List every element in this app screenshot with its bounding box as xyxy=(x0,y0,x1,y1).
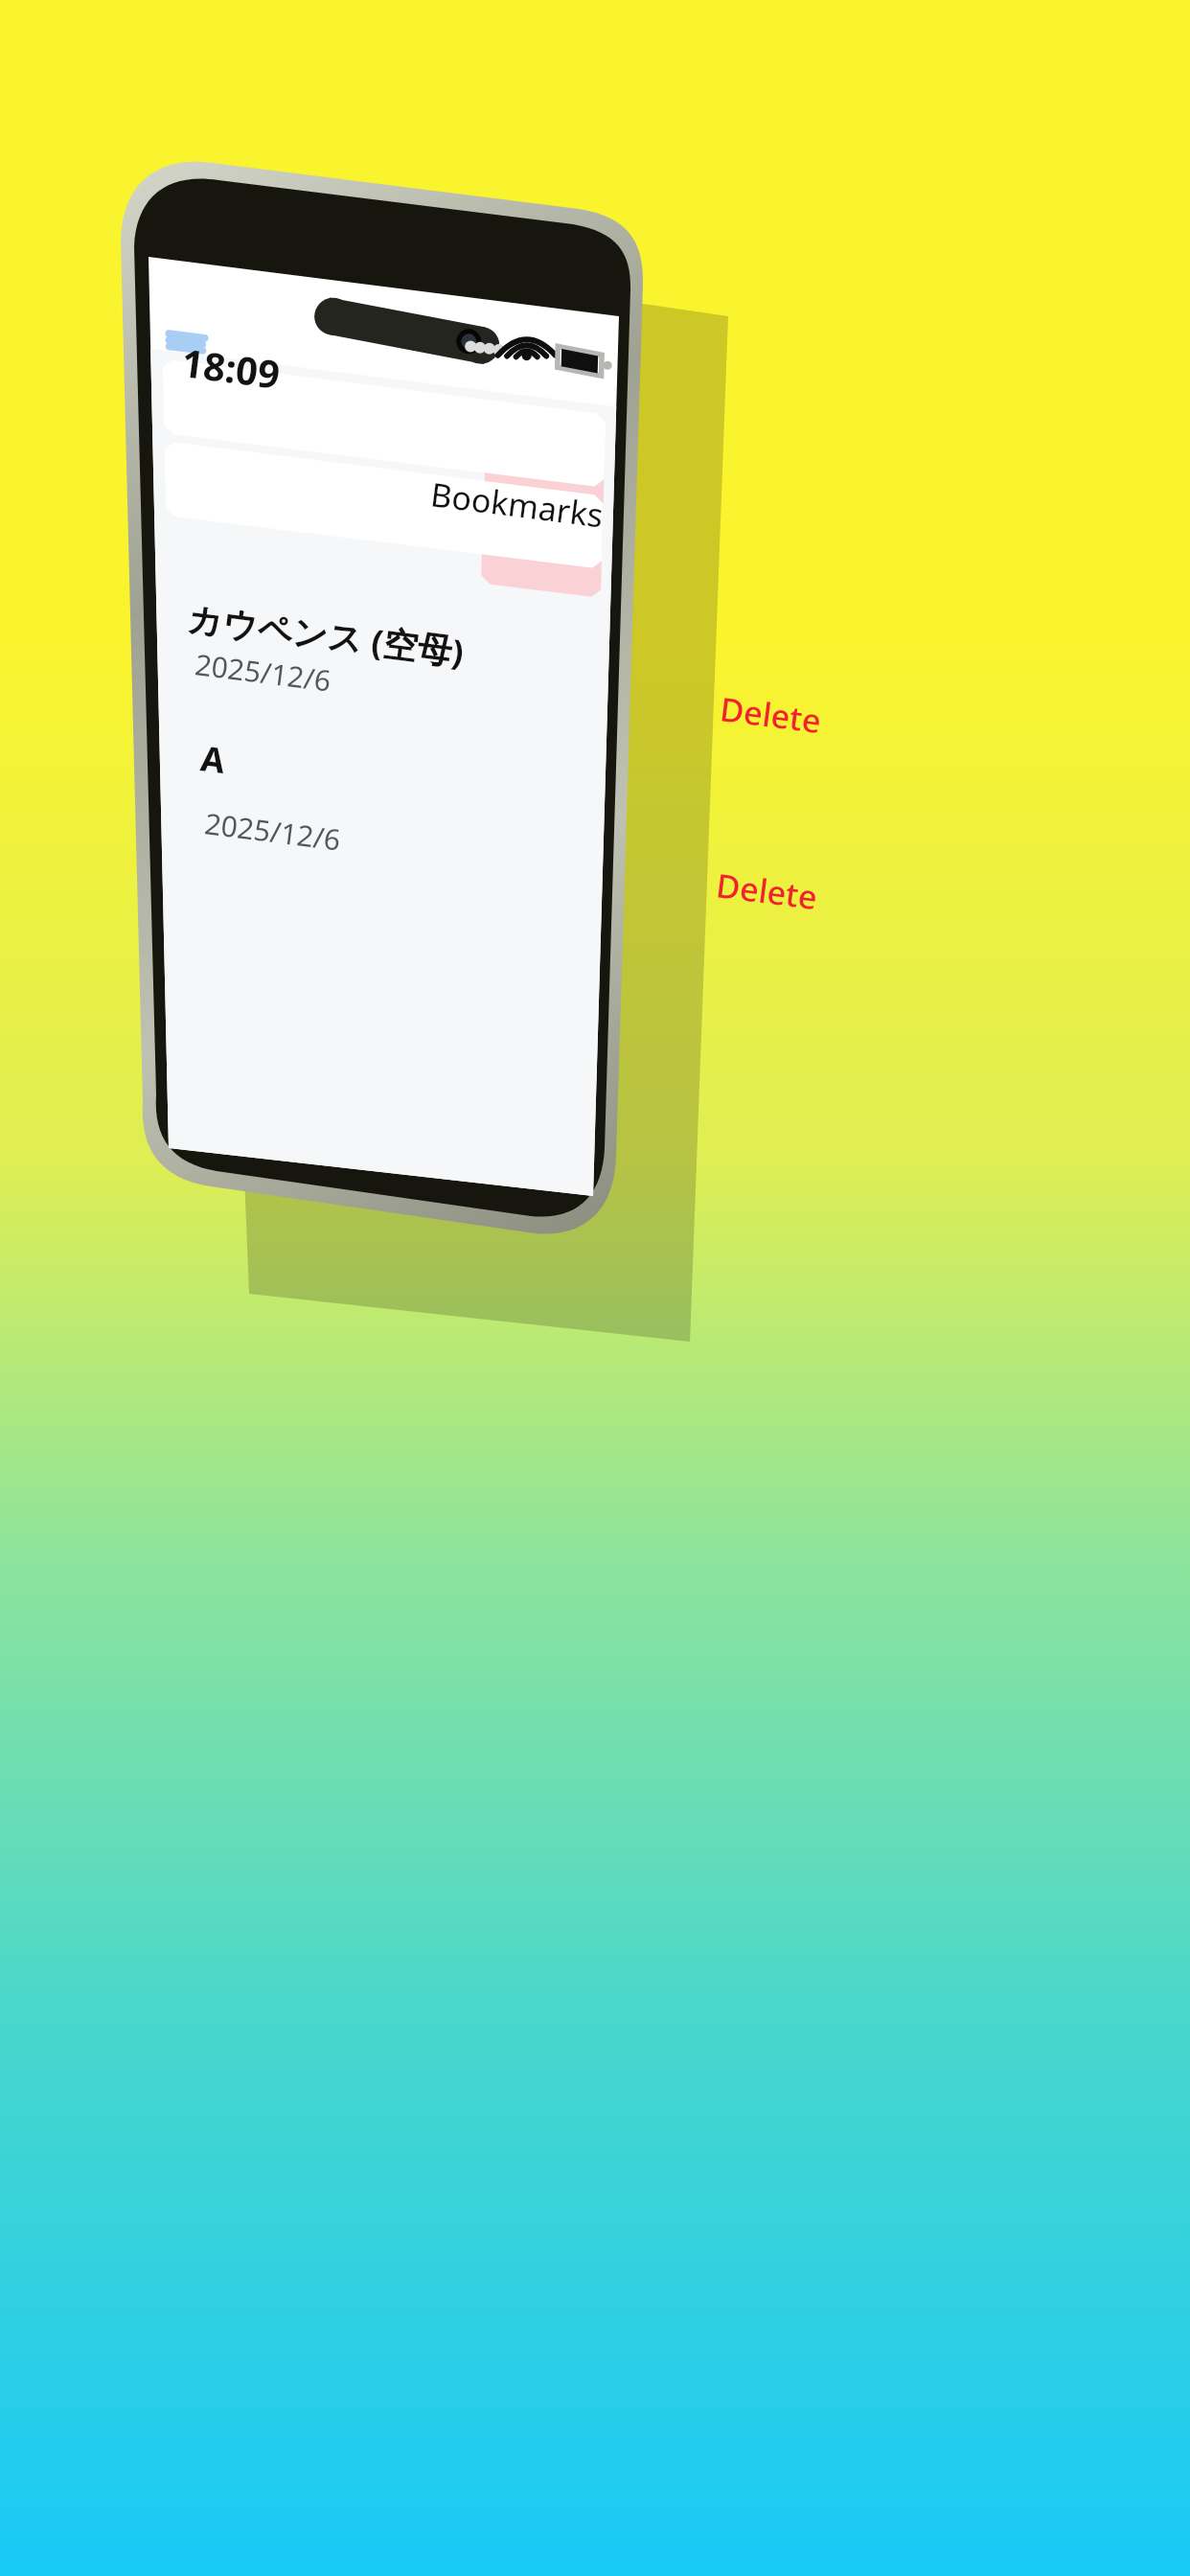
staticText: Delete xyxy=(714,863,820,919)
button[interactable]: Clock xyxy=(179,336,283,399)
button[interactable]: Bookmarks title xyxy=(428,472,606,537)
button[interactable]: カウペンス (空母) xyxy=(185,594,466,676)
button[interactable]: 2025/12/6 xyxy=(203,803,343,859)
staticText: Delete xyxy=(718,686,824,743)
staticText: 18:09 xyxy=(179,336,283,399)
staticText: A xyxy=(198,734,228,784)
button[interactable]: 2025/12/6 xyxy=(193,644,334,700)
button[interactable]: Delete second bookmark xyxy=(714,863,820,919)
staticText: 2025/12/6 xyxy=(193,644,334,700)
button[interactable]: A xyxy=(198,734,228,784)
staticText: カウペンス (空母) xyxy=(185,594,466,676)
staticText: Bookmarks xyxy=(428,472,606,537)
staticText: 2025/12/6 xyxy=(203,803,343,859)
button[interactable]: Delete first bookmark xyxy=(718,686,824,743)
